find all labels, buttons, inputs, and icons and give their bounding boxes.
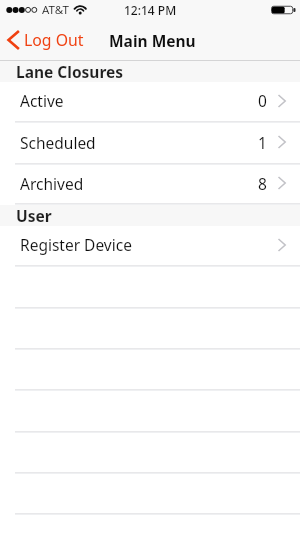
button[interactable]: Active (0, 82, 300, 123)
button[interactable]: Archived (0, 165, 300, 205)
staticText: Register Device (20, 234, 132, 255)
staticText: 8 (258, 173, 267, 194)
staticText: AT&T (42, 2, 69, 18)
staticText: Scheduled (20, 132, 96, 153)
button[interactable]: Log Out (7, 20, 84, 59)
staticText: Active (20, 90, 64, 111)
button[interactable]: Scheduled (0, 123, 300, 165)
staticText: 12:14 PM (124, 2, 177, 18)
staticText: Lane Closures (16, 61, 124, 80)
staticText: 0 (258, 90, 267, 111)
button[interactable]: Register Device (0, 226, 300, 267)
staticText: Main Menu (109, 30, 196, 51)
staticText: 1 (258, 132, 267, 153)
staticText: User (16, 205, 52, 224)
staticText: Log Out (24, 29, 84, 51)
staticText: Archived (20, 173, 84, 194)
